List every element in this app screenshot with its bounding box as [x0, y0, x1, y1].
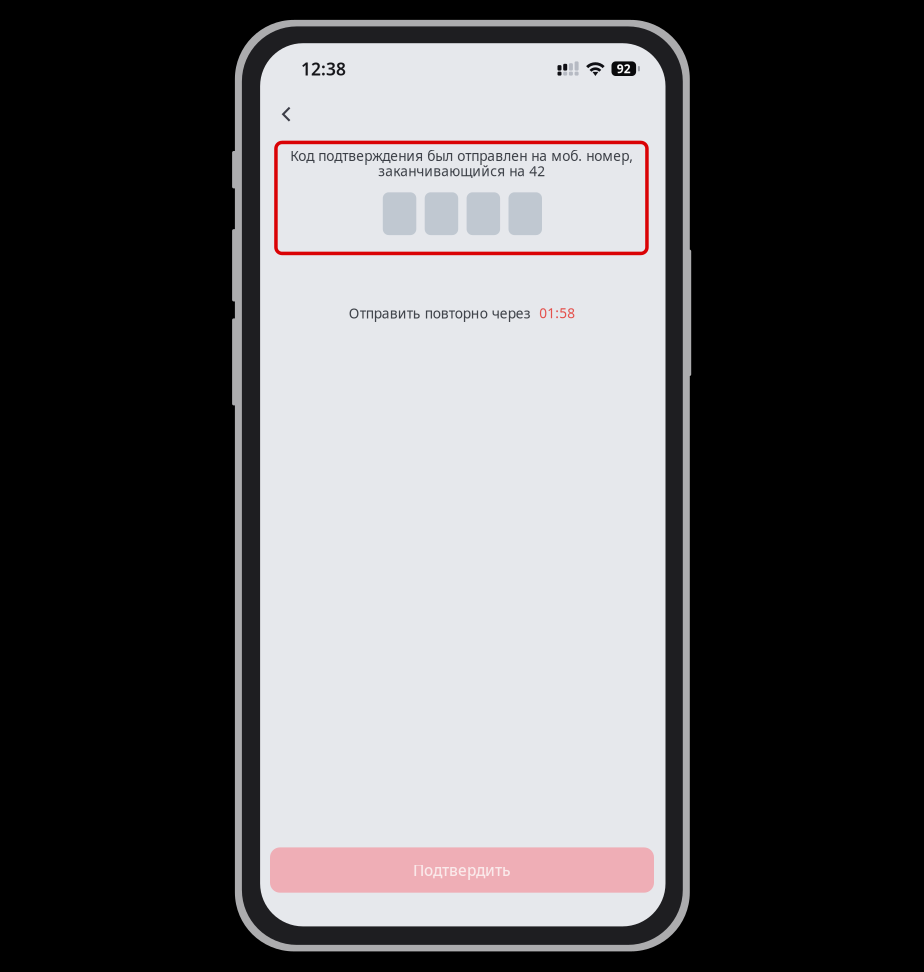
- button[interactable]: Back: [268, 94, 308, 134]
- staticText: 12:38: [301, 57, 346, 80]
- staticText: заканчивающийся на 42: [378, 161, 545, 180]
- button[interactable]: Verification code digit 1: [383, 192, 416, 235]
- staticText: Код подтверждения был отправлен на моб. …: [290, 146, 633, 165]
- staticText: 01:58: [539, 304, 575, 322]
- button[interactable]: Verification code digit 4: [508, 192, 542, 235]
- staticText: 92: [617, 60, 631, 77]
- button[interactable]: 01:58: [539, 304, 575, 322]
- button[interactable]: Verification code digit 2: [425, 192, 458, 235]
- staticText: Подтвердить: [413, 860, 511, 880]
- button[interactable]: Verification code digit 3: [467, 192, 500, 235]
- staticText: Отправить повторно через: [349, 304, 531, 322]
- button[interactable]: Подтвердить: [270, 847, 654, 893]
